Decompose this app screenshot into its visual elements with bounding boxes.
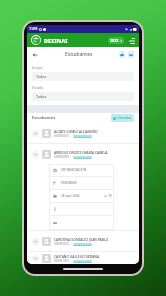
button[interactable]: DESINAI logo [31, 35, 41, 45]
button[interactable]: Expand [27, 144, 139, 164]
staticText: DESINAI [44, 37, 68, 44]
staticText: MATRICULADO [74, 243, 91, 246]
staticText: ALZATE GOMEZ ALEJANDRO [54, 129, 98, 133]
staticText: MATRICULADO [74, 135, 91, 138]
staticText: 18 [108, 194, 112, 198]
staticText: 7:09 [29, 26, 38, 32]
staticText: CARDONA GONZALEZ JUAN PABLO [54, 237, 109, 241]
staticText: 2022 [110, 38, 119, 43]
button[interactable]: 28 sept 2004 [49, 190, 114, 202]
staticText: Todos [36, 94, 47, 99]
staticText: ARREGUI OROZCO MARIA CAMILA [54, 150, 108, 154]
button[interactable]: Expand [27, 231, 139, 251]
staticText: FEMENINO [61, 181, 78, 185]
staticText: 28 sept 2004 [61, 194, 80, 198]
button[interactable]: Back [30, 50, 39, 59]
button[interactable]: Expand [27, 252, 139, 264]
button[interactable]: SDI INNOVACIÓN [49, 164, 114, 176]
staticText: Estudiantes [32, 115, 56, 121]
button[interactable]: Send email [128, 51, 134, 58]
button[interactable]: 2022 [108, 37, 124, 44]
staticText: 000900074 - [54, 242, 72, 246]
button[interactable]: Expand [32, 238, 39, 245]
staticText: Todos [36, 74, 47, 79]
staticText: 000900000 - [54, 155, 72, 159]
button[interactable]: Expand [32, 151, 39, 158]
button[interactable] [49, 216, 114, 229]
staticText: Grupo [32, 65, 43, 70]
button[interactable]: Upload to cloud [119, 51, 125, 58]
button[interactable]: Expand [32, 255, 39, 262]
staticText: MATRICULADO [74, 260, 91, 263]
button[interactable]: Menu [127, 36, 136, 45]
button[interactable]: Llamadas [111, 114, 134, 122]
button[interactable] [49, 203, 114, 215]
staticText: 000901200 - [54, 259, 72, 263]
button[interactable]: Todos [32, 92, 134, 101]
button[interactable]: Expand [32, 130, 39, 137]
button[interactable]: FEMENINO [49, 177, 114, 189]
staticText: Estado [32, 85, 44, 90]
staticText: CASTAÑO GALLEGO TATIANA [54, 254, 100, 258]
staticText: 000900073 - [54, 134, 72, 138]
button[interactable]: Expand [27, 123, 139, 143]
staticText: MATRICULADO [74, 156, 91, 159]
staticText: Llamadas [117, 116, 132, 120]
staticText: Estudiantes [65, 51, 93, 58]
staticText: SDI INNOVACIÓN [61, 168, 87, 172]
button[interactable]: Todos [32, 72, 134, 81]
